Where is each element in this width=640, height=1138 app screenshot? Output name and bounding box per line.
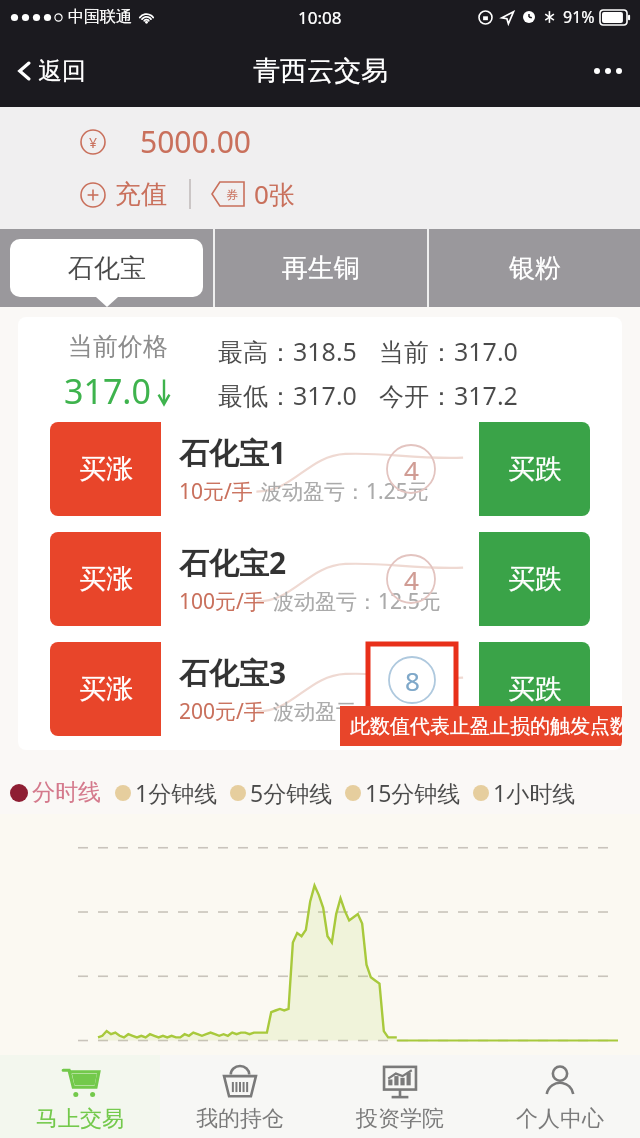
button[interactable]: 石化宝3 — [161, 642, 479, 736]
button[interactable]: 买跌 — [479, 642, 590, 736]
staticText: 个人中心 — [516, 1105, 604, 1133]
staticText: 买涨 — [79, 562, 133, 596]
staticText: 买涨 — [79, 452, 133, 486]
button[interactable]: 买涨 — [50, 532, 161, 626]
button[interactable]: More options — [576, 54, 640, 88]
staticText: 4 — [404, 452, 419, 487]
staticText: 8 — [404, 672, 419, 707]
button[interactable]: 分时线 — [10, 778, 101, 807]
staticText: 分时线 — [32, 778, 101, 807]
staticText: 10:08 — [298, 6, 342, 29]
staticText: 马上交易 — [36, 1105, 124, 1133]
staticText: 石化宝2 — [179, 542, 287, 583]
staticText: 1小时线 — [493, 777, 576, 808]
staticText: 波动盈亏：1.25元 — [261, 477, 429, 506]
staticText: 此数值代表止盈止损的触发点数 — [350, 714, 622, 739]
button[interactable]: 银粉 — [429, 229, 640, 307]
button[interactable]: 1分钟线 — [115, 777, 218, 808]
button[interactable]: 券 — [211, 176, 295, 212]
button[interactable]: 石化宝 — [0, 229, 213, 307]
button[interactable]: 石化宝1 — [161, 422, 479, 516]
button[interactable]: 买跌 — [479, 422, 590, 516]
staticText: 投资学院 — [356, 1105, 444, 1133]
button[interactable]: 我的持仓 — [160, 1055, 320, 1138]
button[interactable]: 买涨 — [50, 642, 161, 736]
button[interactable]: Trigger points 8 — [385, 663, 437, 715]
staticText: 最高：318.5 — [218, 334, 357, 368]
staticText: 我的持仓 — [196, 1105, 284, 1133]
staticText: 200元/手 — [179, 697, 265, 726]
staticText: 中国联通 — [68, 7, 132, 27]
staticText: 5000.00 — [140, 121, 251, 162]
staticText: 返回 — [38, 56, 86, 86]
staticText: 再生铜 — [282, 252, 360, 285]
staticText: 波动盈亏：12.5元 — [273, 587, 441, 616]
button[interactable]: 15分钟线 — [345, 777, 461, 808]
staticText: 银粉 — [509, 252, 561, 285]
staticText: 317.0 — [64, 368, 151, 414]
staticText: 91% — [563, 6, 595, 28]
button[interactable]: Trigger points 4 — [385, 553, 437, 605]
button[interactable]: 投资学院 — [320, 1055, 480, 1138]
button[interactable]: 买涨 — [50, 422, 161, 516]
button[interactable]: 石化宝2 — [161, 532, 479, 626]
staticText: 当前：317.0 — [379, 334, 518, 368]
button[interactable]: Trigger points 4 — [385, 443, 437, 495]
button[interactable]: 再生铜 — [215, 229, 427, 307]
staticText: 买跌 — [508, 562, 562, 596]
staticText: 买跌 — [508, 452, 562, 486]
button[interactable]: 充值 — [80, 178, 171, 211]
staticText: ¥ — [89, 133, 98, 152]
staticText: 石化宝 — [68, 252, 146, 285]
staticText: 券 — [226, 187, 238, 202]
staticText: 今开：317.2 — [379, 378, 518, 412]
staticText: 波动盈亏：25元 — [273, 697, 424, 726]
staticText: 5分钟线 — [250, 777, 333, 808]
staticText: 买涨 — [79, 672, 133, 706]
staticText: 10元/手 — [179, 477, 253, 506]
staticText: 石化宝3 — [179, 652, 287, 693]
button[interactable]: 1小时线 — [473, 777, 576, 808]
staticText: 8 — [405, 663, 420, 698]
button[interactable]: 个人中心 — [480, 1055, 640, 1138]
staticText: 当前价格 — [68, 331, 168, 362]
button[interactable]: 返回 — [0, 48, 100, 94]
staticText: 最低：317.0 — [218, 378, 357, 412]
staticText: 青西云交易 — [253, 54, 388, 88]
button[interactable]: 马上交易 — [0, 1055, 160, 1138]
button[interactable]: 买跌 — [479, 532, 590, 626]
staticText: 买跌 — [508, 672, 562, 706]
staticText: 充值 — [115, 178, 167, 211]
staticText: 石化宝1 — [179, 432, 287, 473]
staticText: 15分钟线 — [365, 777, 461, 808]
staticText: 1分钟线 — [135, 777, 218, 808]
staticText: 0张 — [254, 176, 295, 212]
button[interactable]: 5分钟线 — [230, 777, 333, 808]
staticText: 100元/手 — [179, 587, 265, 616]
staticText: 4 — [404, 562, 419, 597]
